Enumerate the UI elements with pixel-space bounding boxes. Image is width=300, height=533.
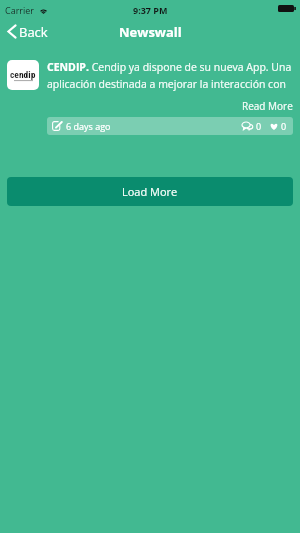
staticText: CENDIP. Cendip ya dispone de su nueva Ap… [47, 60, 293, 91]
other: Posted [52, 121, 62, 131]
staticText: 0 [281, 120, 287, 132]
button[interactable]: Load More [7, 177, 293, 206]
button[interactable]: Posted [47, 117, 293, 135]
staticText: 9:37 PM [133, 4, 168, 16]
staticText: Carrier [5, 4, 35, 16]
staticText: cendip [10, 69, 36, 80]
button[interactable]: Back [0, 21, 56, 43]
staticText: Newswall [119, 23, 182, 41]
button[interactable]: Read More [242, 99, 293, 113]
staticText: 0 [256, 120, 262, 132]
other: Comments [242, 122, 253, 131]
staticText: Load More [122, 184, 178, 199]
staticText: Back [19, 23, 48, 41]
button[interactable]: cendip [7, 60, 39, 90]
other: Likes [270, 123, 278, 130]
staticText: 6 days ago [66, 120, 111, 132]
